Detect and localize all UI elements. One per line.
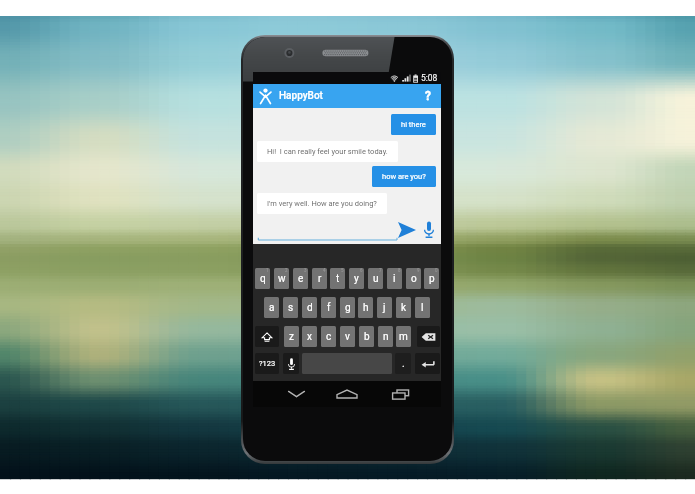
button[interactable]: d — [302, 297, 317, 318]
staticText: 9 — [417, 268, 420, 273]
staticText: z — [289, 331, 294, 343]
other: Enter — [421, 359, 435, 369]
staticText: 3 — [304, 268, 307, 273]
staticText: b — [364, 331, 370, 343]
staticText: o — [411, 273, 417, 285]
button[interactable]: Enter — [415, 353, 440, 374]
button[interactable]: h — [358, 297, 373, 318]
button[interactable]: Help — [416, 84, 440, 108]
button[interactable]: Recent apps — [384, 382, 418, 406]
staticText: n — [383, 331, 389, 343]
button[interactable]: g — [340, 297, 355, 318]
staticText: v — [345, 331, 350, 343]
staticText: . — [402, 358, 405, 370]
button[interactable]: o — [406, 268, 421, 289]
staticText: c — [326, 331, 332, 343]
staticText: l — [421, 302, 424, 314]
staticText: d — [307, 302, 313, 314]
staticText: g — [345, 302, 351, 314]
staticText: i — [393, 273, 396, 285]
staticText: 6 — [360, 268, 363, 273]
button[interactable]: f — [321, 297, 336, 318]
button[interactable]: Voice input — [420, 219, 438, 240]
staticText: 2 — [285, 268, 288, 273]
other: HappyBot — [259, 88, 272, 104]
staticText: y — [354, 273, 359, 285]
staticText: t — [336, 273, 340, 285]
button[interactable]: v — [340, 326, 355, 347]
button[interactable]: m — [396, 326, 411, 347]
button[interactable]: t — [330, 268, 345, 289]
staticText: 8 — [398, 268, 401, 273]
button[interactable]: w — [274, 268, 289, 289]
staticText: 5:08 — [421, 73, 438, 83]
staticText: ?123 — [259, 359, 276, 368]
staticText: q — [260, 273, 266, 285]
button[interactable]: c — [321, 326, 336, 347]
button[interactable]: u — [368, 268, 383, 289]
button[interactable]: Shift — [255, 326, 279, 347]
button[interactable]: z — [284, 326, 299, 347]
staticText: u — [373, 273, 379, 285]
button[interactable]: r — [312, 268, 327, 289]
button[interactable]: s — [283, 297, 298, 318]
staticText: hi there — [401, 120, 426, 129]
button[interactable]: Hi! I can really feel your smile today. — [257, 141, 398, 162]
button[interactable]: i — [387, 268, 402, 289]
staticText: Hi! I can really feel your smile today. — [267, 147, 388, 156]
staticText: r — [318, 273, 322, 285]
staticText: a — [269, 302, 275, 314]
staticText: HappyBot — [279, 90, 323, 102]
staticText: k — [401, 302, 407, 314]
other: Shift — [261, 331, 273, 343]
button[interactable]: Hide keyboard — [279, 382, 313, 406]
button[interactable]: a — [264, 297, 279, 318]
staticText: j — [383, 302, 386, 314]
staticText: 7 — [379, 268, 382, 273]
staticText: how are you? — [382, 172, 426, 181]
staticText: 0 — [435, 268, 438, 273]
button[interactable]: hi there — [391, 114, 436, 135]
button[interactable]: e — [293, 268, 308, 289]
button[interactable]: k — [396, 297, 411, 318]
button[interactable]: b — [359, 326, 374, 347]
button[interactable]: p — [424, 268, 439, 289]
button[interactable]: . — [395, 353, 411, 374]
button[interactable]: how are you? — [372, 166, 436, 187]
staticText: I'm very well. How are you doing? — [267, 199, 377, 208]
staticText: m — [399, 331, 408, 343]
button[interactable]: n — [378, 326, 393, 347]
button[interactable]: x — [302, 326, 317, 347]
button[interactable]: j — [377, 297, 392, 318]
button[interactable]: Send — [396, 219, 418, 240]
staticText: ? — [425, 89, 431, 103]
staticText: x — [307, 331, 312, 343]
other: Backspace — [421, 332, 436, 342]
staticText: p — [429, 273, 435, 285]
staticText: 1 — [266, 268, 269, 273]
button[interactable]: q — [255, 268, 270, 289]
button[interactable]: l — [415, 297, 430, 318]
button[interactable]: Voice typing — [283, 353, 299, 374]
button[interactable]: y — [349, 268, 364, 289]
button[interactable]: I'm very well. How are you doing? — [257, 193, 387, 214]
staticText: s — [288, 302, 294, 314]
button[interactable]: Symbols — [255, 353, 279, 374]
staticText: w — [278, 273, 286, 285]
staticText: 4 — [323, 268, 326, 273]
staticText: f — [327, 302, 331, 314]
button[interactable]: Backspace — [417, 326, 440, 347]
staticText: e — [298, 273, 304, 285]
staticText: h — [363, 302, 369, 314]
staticText: 5 — [341, 268, 344, 273]
button[interactable]: Home — [330, 382, 364, 406]
